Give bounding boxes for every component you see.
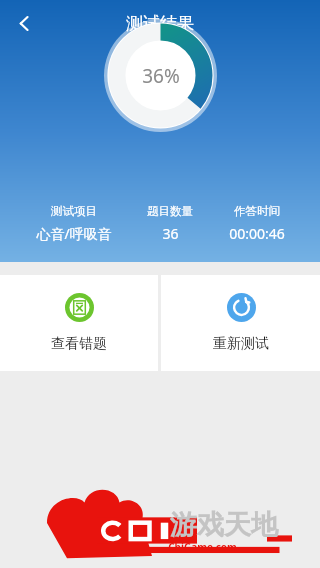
- staticText: 心音/呼吸音: [36, 224, 112, 243]
- button[interactable]: 查看错题: [0, 275, 158, 371]
- staticText: 题目数量: [147, 204, 193, 218]
- staticText: 查看错题: [51, 335, 107, 353]
- button[interactable]: 重新测试: [161, 275, 320, 371]
- staticText: 36%: [142, 63, 180, 89]
- staticText: 测试结果: [126, 13, 194, 34]
- staticText: CbiGame.com: [168, 540, 237, 554]
- staticText: 36: [162, 224, 179, 243]
- staticText: 重新测试: [213, 335, 269, 353]
- staticText: 游戏天地: [170, 508, 278, 542]
- staticText: 作答时间: [234, 204, 280, 218]
- staticText: 测试项目: [51, 204, 97, 218]
- staticText: 00:00:46: [229, 224, 285, 243]
- button[interactable]: Back: [4, 3, 44, 43]
